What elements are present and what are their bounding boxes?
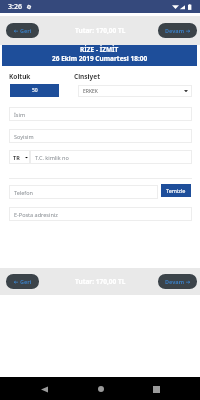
staticText: ERKEK bbox=[83, 88, 98, 95]
staticText: Devam bbox=[165, 27, 184, 34]
staticText: 26 Ekim 2019 Cumartesi 18:00 bbox=[52, 54, 148, 63]
staticText: Telefon bbox=[14, 189, 33, 196]
staticText: Cinsiyet bbox=[74, 72, 100, 81]
staticText: Temizle bbox=[166, 187, 186, 194]
staticText: 3:26 bbox=[8, 2, 22, 12]
button[interactable]: Soyisim bbox=[9, 129, 192, 143]
staticText: RİZE - İZMİT bbox=[80, 45, 119, 54]
button[interactable]: E-Posta adresiniz bbox=[9, 207, 192, 221]
staticText: Tutar: 170,00 TL bbox=[75, 26, 126, 35]
staticText: T.C. kimlik no bbox=[35, 154, 69, 161]
button[interactable]: ERKEK bbox=[78, 85, 192, 97]
staticText: Soyisim bbox=[14, 133, 34, 140]
staticText: Devam bbox=[165, 278, 184, 285]
button[interactable]: Geri bbox=[6, 274, 39, 289]
button[interactable]: 50 bbox=[10, 84, 59, 97]
staticText: E-Posta adresiniz bbox=[14, 211, 58, 218]
button[interactable]: Telefon bbox=[9, 185, 158, 199]
button[interactable]: Devam bbox=[158, 274, 197, 289]
staticText: Geri bbox=[20, 278, 32, 285]
button[interactable]: Temizle bbox=[161, 184, 191, 197]
staticText: Tutar: 170,00 TL bbox=[75, 277, 126, 286]
button[interactable]: İsim bbox=[9, 107, 192, 121]
button[interactable]: Home bbox=[91, 379, 111, 399]
button[interactable]: Devam bbox=[158, 23, 197, 38]
staticText: TR bbox=[13, 154, 20, 161]
staticText: İsim bbox=[14, 111, 26, 118]
button[interactable]: Recent apps bbox=[146, 379, 166, 399]
button[interactable]: TR bbox=[9, 150, 30, 164]
staticText: Koltuk bbox=[9, 72, 31, 81]
button[interactable]: Geri bbox=[6, 23, 39, 38]
staticText: 50 bbox=[32, 87, 38, 94]
button[interactable]: T.C. kimlik no bbox=[30, 150, 192, 164]
staticText: Geri bbox=[20, 27, 32, 34]
button[interactable]: Back bbox=[34, 379, 54, 399]
